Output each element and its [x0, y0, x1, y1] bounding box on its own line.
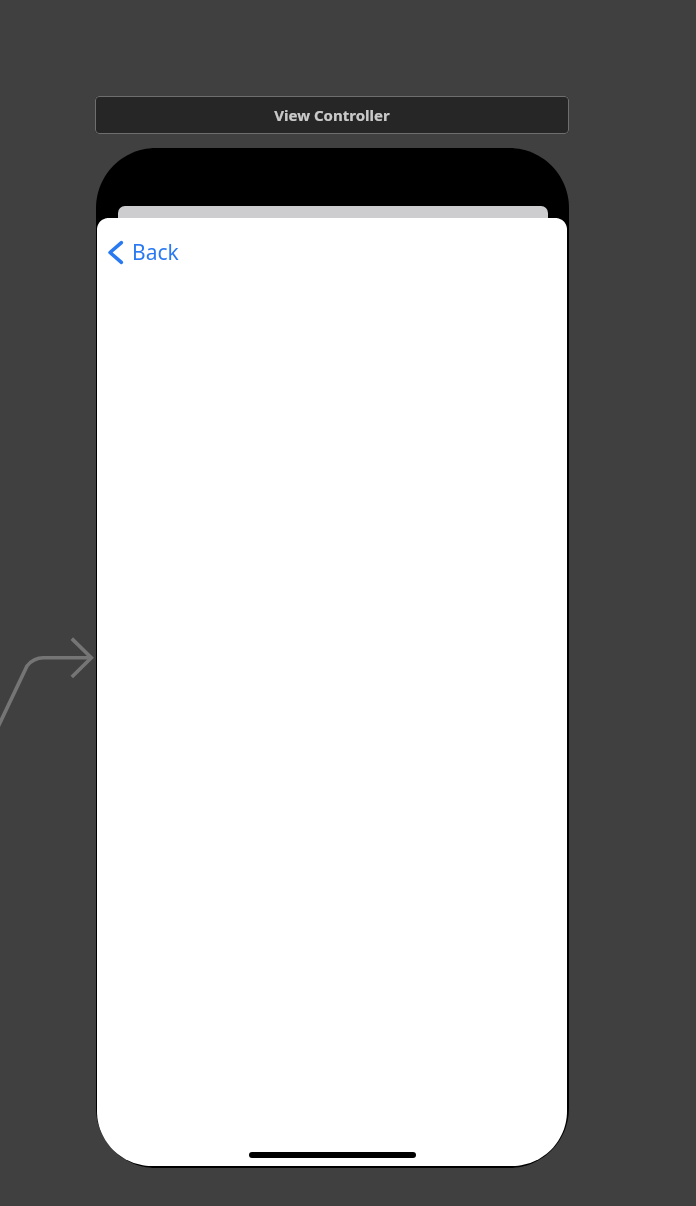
other: Back — [108, 241, 123, 264]
button[interactable]: View Controller — [95, 96, 569, 134]
staticText: Back — [132, 238, 179, 267]
staticText: View Controller — [274, 105, 390, 125]
button[interactable]: Back — [108, 238, 179, 267]
